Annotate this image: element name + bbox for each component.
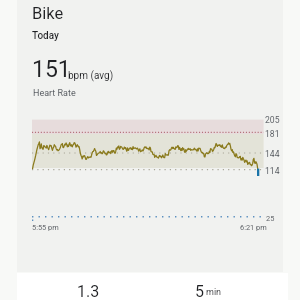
staticText: bpm (avg) [68, 70, 114, 82]
staticText: 181 [265, 129, 280, 139]
button[interactable]: Bike [17, 0, 283, 272]
button[interactable]: 1.3 [17, 273, 288, 300]
staticText: 205 [265, 115, 280, 125]
staticText: 5 [195, 282, 204, 300]
staticText: Today [32, 30, 59, 42]
staticText: 6:21 pm [240, 223, 267, 232]
staticText: 151 [32, 56, 71, 83]
staticText: min [206, 287, 222, 298]
staticText: 144 [265, 149, 280, 159]
staticText: Heart Rate [33, 88, 76, 99]
staticText: 1.3 [77, 282, 100, 300]
staticText: 25 [266, 214, 275, 223]
staticText: 114 [265, 166, 280, 176]
staticText: Bike [32, 4, 64, 23]
staticText: 5:55 pm [32, 223, 59, 232]
